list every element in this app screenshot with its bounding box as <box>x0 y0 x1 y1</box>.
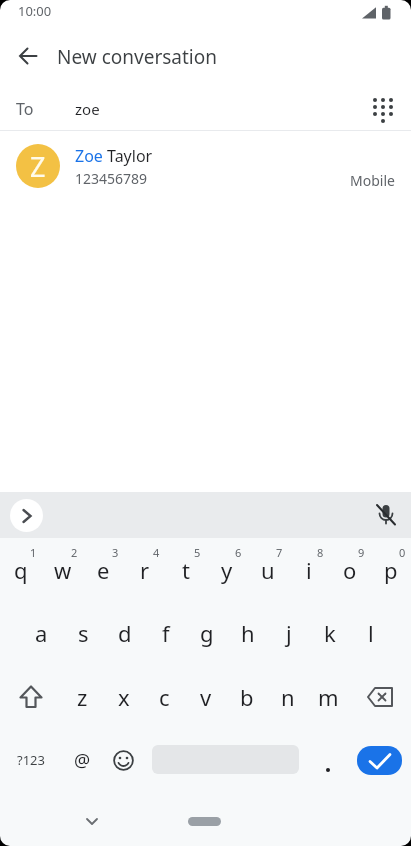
staticText: 10:00 <box>18 2 52 20</box>
button[interactable]: k <box>309 601 350 665</box>
button[interactable]: 0 <box>370 538 411 601</box>
staticText: z <box>77 682 88 712</box>
staticText: To <box>16 98 34 120</box>
button[interactable]: x <box>103 665 144 728</box>
staticText: h <box>241 618 255 648</box>
button[interactable]: l <box>350 601 391 665</box>
staticText: x <box>118 682 130 712</box>
button[interactable] <box>349 665 411 728</box>
button[interactable]: 7 <box>247 538 288 601</box>
staticText: e <box>97 555 110 585</box>
button[interactable]: d <box>104 601 145 665</box>
button[interactable]: 5 <box>165 538 206 601</box>
staticText: 5 <box>194 545 201 560</box>
staticText: w <box>54 555 72 585</box>
staticText: t <box>182 555 190 585</box>
button[interactable] <box>76 805 108 837</box>
button[interactable] <box>369 498 403 532</box>
staticText: 9 <box>358 545 365 560</box>
button[interactable]: b <box>226 665 267 728</box>
staticText: o <box>343 555 357 585</box>
button[interactable]: j <box>268 601 309 665</box>
staticText: y <box>221 555 233 585</box>
button[interactable]: s <box>62 601 104 665</box>
staticText: @ <box>74 748 91 773</box>
button[interactable] <box>348 728 411 792</box>
button[interactable] <box>307 728 348 792</box>
staticText: u <box>261 555 275 585</box>
button[interactable]: ?123 <box>0 728 62 792</box>
button[interactable]: z <box>62 665 103 728</box>
staticText: 1 <box>30 545 37 560</box>
staticText: j <box>286 618 292 648</box>
staticText: 4 <box>153 545 160 560</box>
staticText: b <box>240 682 254 712</box>
staticText: ?123 <box>17 751 45 769</box>
button[interactable] <box>363 89 403 129</box>
button[interactable] <box>103 728 144 792</box>
staticText: c <box>159 682 170 712</box>
button[interactable]: To <box>0 88 411 130</box>
staticText: zoe <box>75 99 100 119</box>
staticText: 2 <box>71 545 78 560</box>
staticText: d <box>118 618 132 648</box>
staticText: 6 <box>235 545 242 560</box>
staticText: Zoe Taylor <box>75 145 153 167</box>
button[interactable]: a <box>20 601 62 665</box>
button[interactable]: 6 <box>206 538 247 601</box>
staticText: Mobile <box>350 171 395 190</box>
button[interactable]: v <box>185 665 226 728</box>
button[interactable]: n <box>267 665 308 728</box>
staticText: New conversation <box>57 44 217 70</box>
button[interactable]: 4 <box>124 538 165 601</box>
staticText: n <box>281 682 295 712</box>
button[interactable]: 8 <box>288 538 329 601</box>
button[interactable]: 3 <box>83 538 124 601</box>
button[interactable]: @ <box>62 728 103 792</box>
staticText: q <box>14 555 28 585</box>
button[interactable]: 2 <box>42 538 83 601</box>
button[interactable]: 9 <box>329 538 370 601</box>
staticText: k <box>324 618 336 648</box>
staticText: p <box>384 555 398 585</box>
button[interactable] <box>8 37 48 77</box>
button[interactable]: g <box>186 601 227 665</box>
staticText: a <box>35 618 48 648</box>
staticText: m <box>318 682 339 712</box>
staticText: r <box>140 555 150 585</box>
staticText: 0 <box>399 545 406 560</box>
staticText: i <box>306 555 312 585</box>
staticText: 123456789 <box>75 169 148 188</box>
button[interactable]: c <box>144 665 185 728</box>
button[interactable]: Z <box>0 131 411 201</box>
staticText: 3 <box>112 545 119 560</box>
button[interactable] <box>10 499 43 532</box>
staticText: s <box>78 618 89 648</box>
staticText: f <box>162 618 170 648</box>
staticText: l <box>368 618 374 648</box>
staticText: g <box>200 618 214 648</box>
button[interactable]: h <box>227 601 268 665</box>
staticText: v <box>200 682 212 712</box>
button[interactable] <box>188 817 221 826</box>
button[interactable]: m <box>308 665 349 728</box>
staticText: 8 <box>317 545 324 560</box>
button[interactable]: f <box>145 601 186 665</box>
staticText: Z <box>30 148 46 185</box>
staticText: 7 <box>276 545 283 560</box>
button[interactable]: 1 <box>0 538 42 601</box>
button[interactable] <box>0 665 62 728</box>
